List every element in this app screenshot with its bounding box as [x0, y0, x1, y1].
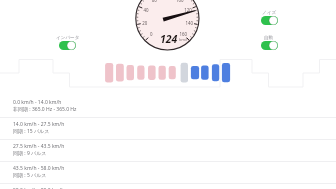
- staticText: 自動: [264, 35, 274, 41]
- button[interactable]: インバータ: [59, 41, 76, 50]
- staticText: インバータ: [56, 35, 80, 41]
- button[interactable]: 14.0 km/h - 27.5 km/h: [0, 118, 336, 140]
- button[interactable]: 43.5 km/h - 58.0 km/h: [0, 162, 336, 184]
- staticText: 14.0 km/h - 27.5 km/h: [13, 121, 65, 128]
- staticText: 同期 : 15 パルス: [13, 128, 50, 135]
- staticText: 43.5 km/h - 58.0 km/h: [13, 165, 65, 172]
- staticText: 非同期 : 365.0 Hz - 365.0 Hz: [13, 106, 77, 113]
- staticText: ノイズ: [262, 10, 277, 16]
- button[interactable]: 自動: [261, 41, 278, 50]
- staticText: 同期 : 5 パルス: [13, 172, 47, 179]
- button[interactable]: 0.0 km/h - 14.0 km/h: [0, 96, 336, 118]
- staticText: 0.0 km/h - 14.0 km/h: [13, 99, 62, 106]
- staticText: 27.5 km/h - 43.5 km/h: [13, 143, 65, 150]
- button[interactable]: ノイズ: [261, 16, 278, 25]
- button[interactable]: 27.5 km/h - 43.5 km/h: [0, 140, 336, 162]
- button[interactable]: 58.0 km/h - 80.0 km/h: [0, 184, 336, 189]
- staticText: 58.0 km/h - 80.0 km/h: [13, 187, 65, 189]
- staticText: 同期 : 9 パルス: [13, 150, 47, 157]
